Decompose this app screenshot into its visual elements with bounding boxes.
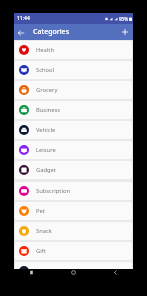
button[interactable]: Leisure [15, 141, 132, 159]
staticText: Business [36, 106, 61, 114]
button[interactable]: Grocery [15, 81, 132, 99]
staticText: Gift [36, 247, 46, 255]
button[interactable]: Health [15, 41, 132, 59]
button[interactable]: Snack [15, 222, 132, 240]
staticText: School [36, 66, 55, 74]
button[interactable]: Back [14, 26, 27, 39]
button[interactable]: Vehicle [15, 121, 132, 139]
button[interactable]: Home [68, 267, 79, 278]
staticText: Gadget [36, 166, 56, 174]
button[interactable]: Travel [15, 262, 132, 269]
button[interactable]: School [15, 61, 132, 79]
staticText: Pet [36, 207, 45, 215]
staticText: Subscription [36, 187, 71, 195]
staticText: Health [36, 46, 54, 54]
staticText: Snack [36, 227, 52, 235]
staticText: Leisure [36, 146, 56, 154]
staticText: Vehicle [36, 126, 56, 134]
button[interactable]: Back [110, 267, 121, 278]
staticText: Grocery [36, 86, 58, 94]
button[interactable]: Business [15, 101, 132, 119]
button[interactable]: Pet [15, 202, 132, 220]
staticText: Categories [33, 27, 70, 37]
button[interactable]: Gadget [15, 161, 132, 179]
button[interactable]: Recent apps [26, 267, 37, 278]
button[interactable]: Subscription [15, 182, 132, 200]
button[interactable]: Gift [15, 242, 132, 260]
staticText: 95% [119, 16, 128, 22]
staticText: 11:44 [17, 15, 30, 22]
button[interactable]: Add category [119, 26, 131, 38]
